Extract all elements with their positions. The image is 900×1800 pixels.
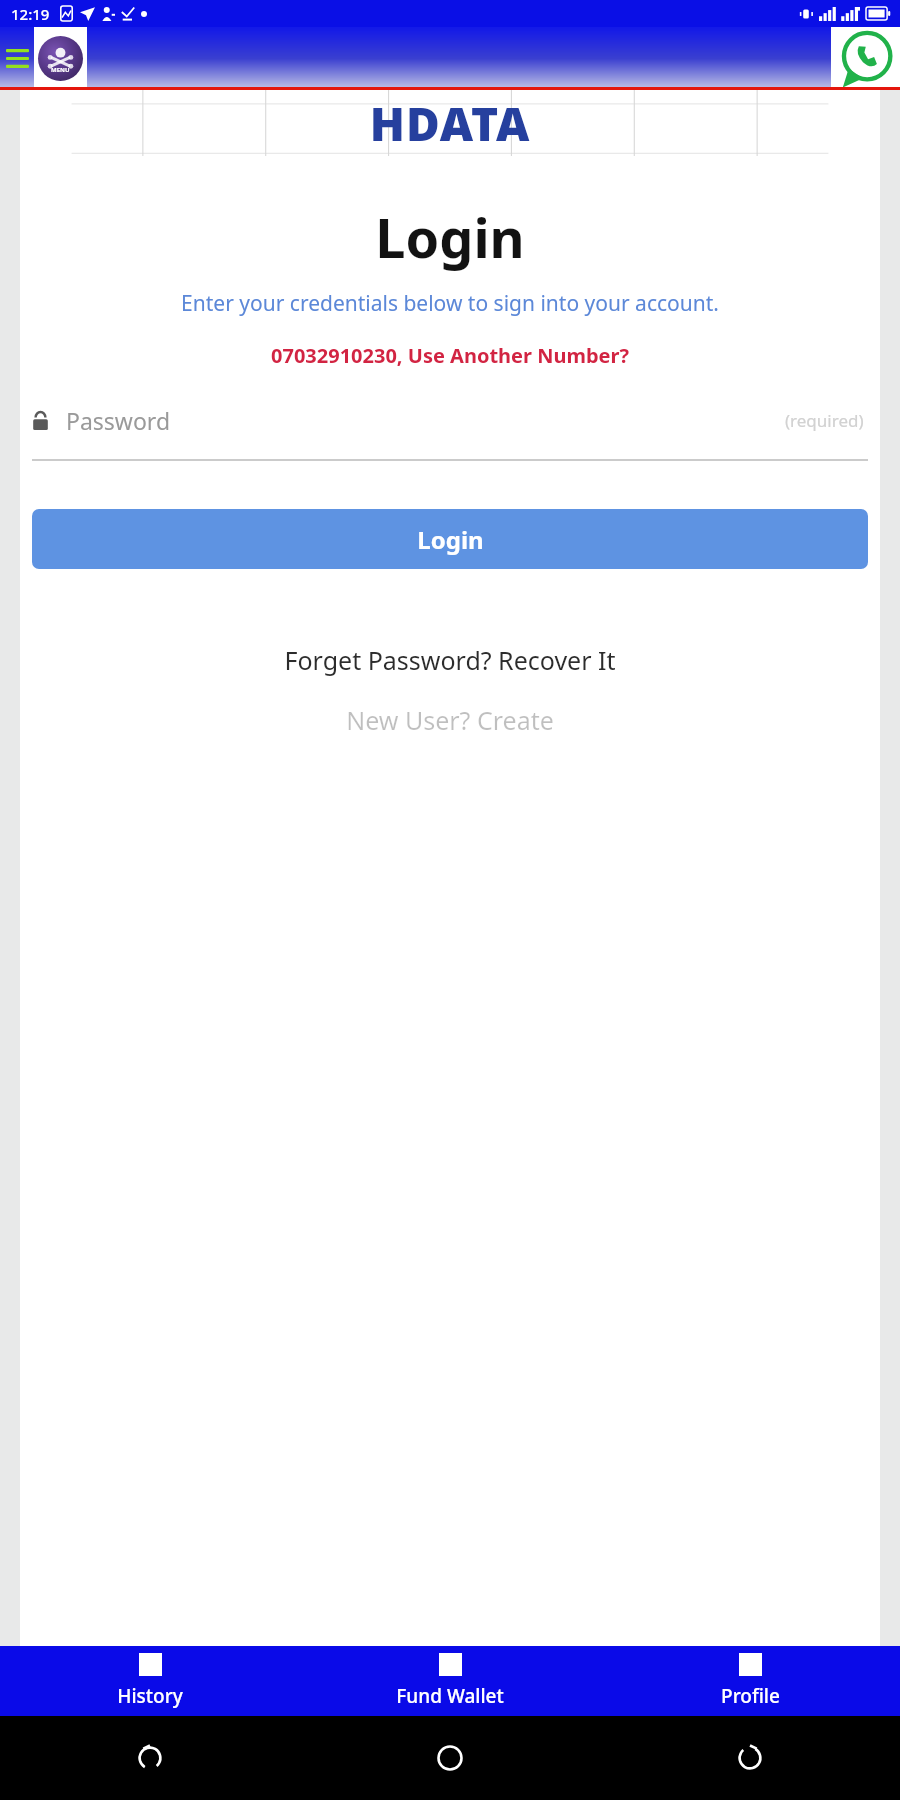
staticText: Login <box>20 200 880 274</box>
staticText: Profile <box>721 1683 780 1709</box>
button[interactable]: Login <box>32 509 868 569</box>
button[interactable]: Recent apps <box>600 1716 900 1800</box>
button[interactable]: WhatsApp support <box>831 27 900 90</box>
button[interactable]: Fund Wallet <box>300 1646 600 1716</box>
staticText: MENU <box>51 66 70 74</box>
staticText: Password <box>66 405 171 436</box>
button[interactable]: Menu logo <box>34 27 87 90</box>
staticText: 07032910230, Use Another Number? <box>20 342 880 369</box>
staticText: HDATA <box>20 92 880 155</box>
staticText: History <box>117 1683 183 1709</box>
button[interactable]: Back <box>0 1716 300 1800</box>
staticText: Forget Password? Recover It <box>20 643 880 677</box>
staticText: New User? Create <box>20 703 880 737</box>
button[interactable]: History <box>0 1646 300 1716</box>
button[interactable]: 07032910230, Use Another Number? <box>20 342 880 369</box>
staticText: Login <box>417 523 484 556</box>
staticText: (required) <box>785 409 864 432</box>
staticText: Enter your credentials below to sign int… <box>28 289 872 318</box>
button[interactable]: Profile <box>600 1646 900 1716</box>
staticText: Fund Wallet <box>396 1683 504 1709</box>
button[interactable]: Forget Password? Recover It <box>20 643 880 677</box>
button[interactable]: Open menu <box>0 27 34 90</box>
staticText: 12:19 <box>11 4 50 24</box>
button[interactable]: Home <box>300 1716 600 1800</box>
button[interactable]: Password <box>32 403 868 437</box>
